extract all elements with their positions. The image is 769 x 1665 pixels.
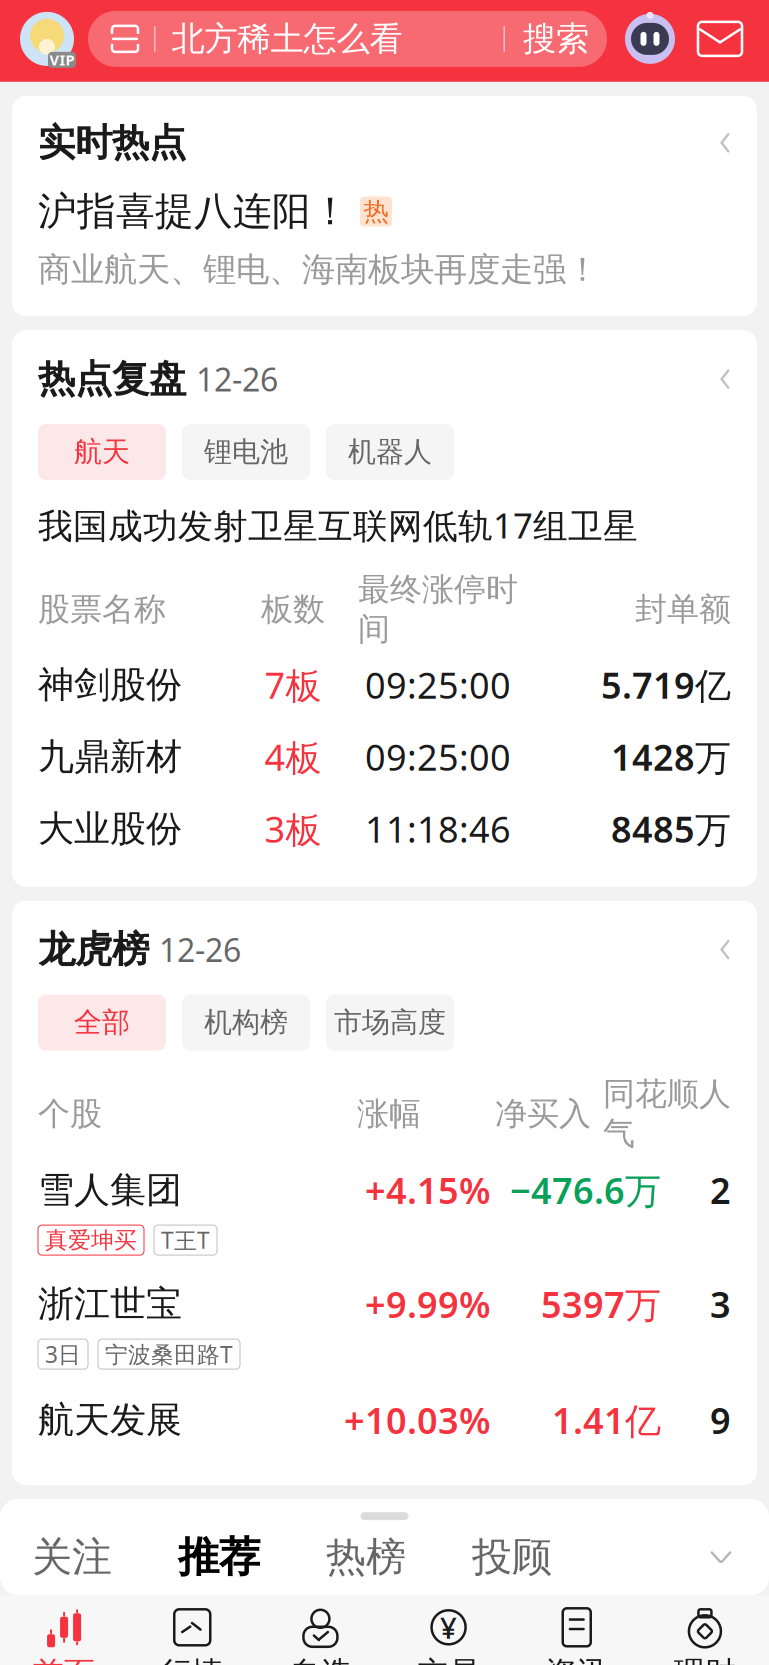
button[interactable]: AI assistant bbox=[623, 12, 677, 66]
button[interactable]: 自选 bbox=[256, 1603, 384, 1665]
staticText: 我国成功发射卫星互联网低轨17组卫星 bbox=[38, 502, 638, 548]
staticText: 涨幅 bbox=[357, 1094, 421, 1133]
staticText: 沪指喜提八连阳！ bbox=[38, 188, 350, 235]
staticText: 09:25:00 bbox=[365, 661, 511, 709]
button[interactable]: 首页 bbox=[0, 1603, 128, 1665]
staticText: 行情 bbox=[161, 1654, 223, 1665]
button[interactable]: 推荐 bbox=[168, 1532, 270, 1582]
button[interactable]: 关注 bbox=[22, 1533, 122, 1582]
staticText: 关注 bbox=[32, 1533, 112, 1582]
staticText: 09:25:00 bbox=[365, 733, 511, 781]
button[interactable]: 锂电池 bbox=[182, 424, 310, 480]
staticText: 北方稀土怎么看 bbox=[171, 18, 402, 59]
staticText: 浙江世宝 bbox=[38, 1282, 182, 1326]
button[interactable]: 全部 bbox=[38, 994, 166, 1050]
button[interactable]: 热榜 bbox=[316, 1533, 416, 1582]
staticText: +9.99% bbox=[365, 1280, 491, 1328]
button[interactable]: 实时热点 bbox=[12, 96, 757, 316]
staticText: 龙虎榜 bbox=[38, 927, 149, 973]
staticText: 11:18:46 bbox=[365, 805, 511, 853]
staticText: 宁波桑田路T bbox=[105, 1339, 233, 1369]
button[interactable]: 投顾 bbox=[462, 1533, 562, 1582]
staticText: 航天发展 bbox=[38, 1398, 182, 1442]
button[interactable]: 市场高度 bbox=[326, 994, 454, 1050]
staticText: 1428万 bbox=[611, 733, 731, 781]
staticText: 大业股份 bbox=[38, 807, 182, 851]
staticText: 商业航天、锂电、海南板块再度走强！ bbox=[38, 249, 599, 290]
button[interactable]: Collapse bbox=[695, 1537, 747, 1577]
staticText: 3 bbox=[710, 1280, 731, 1328]
staticText: 全部 bbox=[74, 1005, 130, 1040]
staticText: 个股 bbox=[38, 1094, 102, 1133]
button[interactable]: ¥ bbox=[384, 1603, 513, 1665]
staticText: 1.41亿 bbox=[552, 1396, 661, 1444]
staticText: 2 bbox=[710, 1166, 731, 1214]
button[interactable]: 机构榜 bbox=[182, 994, 310, 1050]
staticText: 4板 bbox=[264, 733, 321, 781]
staticText: 5397万 bbox=[541, 1280, 661, 1328]
staticText: 板数 bbox=[261, 590, 325, 629]
staticText: 锂电池 bbox=[204, 435, 288, 469]
staticText: 航天 bbox=[74, 435, 130, 469]
staticText: 自选 bbox=[289, 1654, 351, 1665]
staticText: 理财 bbox=[674, 1654, 736, 1665]
staticText: 净买入 bbox=[495, 1094, 591, 1133]
staticText: 雪人集团 bbox=[38, 1168, 182, 1212]
staticText: 股票名称 bbox=[38, 590, 166, 629]
staticText: 热点复盘 bbox=[38, 356, 186, 402]
staticText: 九鼎新材 bbox=[38, 735, 182, 779]
button[interactable]: 机器人 bbox=[326, 424, 454, 480]
staticText: 5.719亿 bbox=[601, 661, 731, 709]
staticText: 资讯 bbox=[546, 1654, 608, 1665]
staticText: 搜索 bbox=[523, 18, 589, 59]
staticText: 热 bbox=[363, 196, 388, 227]
button[interactable]: 热点复盘 bbox=[38, 330, 731, 402]
button[interactable]: 北方稀土怎么看 bbox=[88, 11, 607, 67]
staticText: VIP bbox=[49, 50, 74, 70]
staticText: 推荐 bbox=[178, 1532, 260, 1582]
staticText: 同花顺人气 bbox=[603, 1074, 731, 1153]
staticText: 真爱坤买 bbox=[45, 1226, 137, 1254]
staticText: 3板 bbox=[264, 805, 321, 853]
button[interactable]: 龙虎榜 bbox=[38, 901, 731, 973]
button[interactable]: 航天 bbox=[38, 424, 166, 480]
staticText: 封单额 bbox=[635, 590, 731, 629]
button[interactable]: 行情 bbox=[128, 1603, 256, 1665]
staticText: 3日 bbox=[45, 1339, 81, 1369]
button[interactable]: Profile bbox=[18, 10, 76, 68]
staticText: 投顾 bbox=[472, 1533, 552, 1582]
staticText: 热榜 bbox=[326, 1533, 406, 1582]
staticText: 市场高度 bbox=[334, 1005, 446, 1040]
staticText: 8485万 bbox=[611, 805, 731, 853]
staticText: 机器人 bbox=[348, 435, 432, 469]
staticText: T王T bbox=[161, 1225, 210, 1255]
button[interactable]: 资讯 bbox=[513, 1603, 641, 1665]
staticText: 实时热点 bbox=[38, 120, 186, 166]
staticText: −476.6万 bbox=[510, 1166, 661, 1214]
staticText: 12-26 bbox=[196, 358, 278, 400]
staticText: 机构榜 bbox=[204, 1005, 288, 1040]
staticText: 7板 bbox=[264, 661, 321, 709]
button[interactable]: Messages bbox=[695, 17, 745, 61]
button[interactable]: 理财 bbox=[641, 1603, 769, 1665]
staticText: 最终涨停时间 bbox=[358, 570, 518, 649]
staticText: +10.03% bbox=[344, 1396, 491, 1444]
staticText: +4.15% bbox=[365, 1166, 491, 1214]
staticText: 交易 bbox=[418, 1654, 480, 1665]
staticText: 12-26 bbox=[159, 928, 241, 971]
staticText: 神剑股份 bbox=[38, 663, 182, 707]
staticText: ¥ bbox=[440, 1608, 457, 1647]
staticText: 首页 bbox=[33, 1654, 95, 1665]
staticText: 9 bbox=[710, 1396, 731, 1444]
